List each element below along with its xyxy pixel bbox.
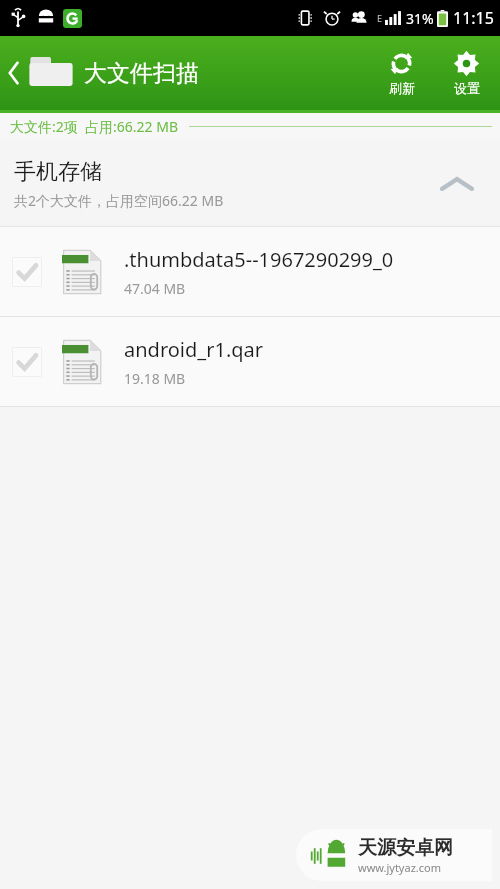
button[interactable]: 返回: [6, 36, 199, 110]
staticText: .thumbdata5--1967290299_0: [124, 246, 394, 273]
staticText: android_r1.qar: [124, 336, 264, 363]
staticText: 31%: [406, 9, 434, 28]
button[interactable]: 选择 android_r1.qar: [0, 317, 500, 407]
staticText: E: [377, 12, 383, 24]
staticText: www.jytyaz.com: [358, 860, 441, 875]
staticText: 大文件扫描: [84, 59, 199, 88]
staticText: 共2个大文件，占用空间66.22 MB: [14, 191, 224, 210]
button[interactable]: 手机存储: [0, 140, 500, 227]
button[interactable]: 设置: [447, 46, 486, 100]
button[interactable]: 选择 .thumbdata5--1967290299_0: [12, 257, 42, 287]
staticText: 设置: [454, 80, 480, 96]
staticText: 刷新: [389, 80, 415, 96]
staticText: 19.18 MB: [124, 369, 186, 388]
button[interactable]: 选择 android_r1.qar: [12, 347, 42, 377]
button[interactable]: 收起: [436, 163, 478, 205]
staticText: 11:15: [453, 7, 494, 29]
staticText: 手机存储: [14, 158, 102, 186]
button[interactable]: 刷新: [382, 46, 421, 100]
staticText: 大文件:2项 占用:66.22 MB: [10, 117, 179, 136]
button[interactable]: 选择 .thumbdata5--1967290299_0: [0, 227, 500, 317]
staticText: 47.04 MB: [124, 279, 186, 298]
staticText: 天源安卓网: [358, 836, 453, 860]
